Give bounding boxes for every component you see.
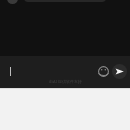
button[interactable]: Message input [0, 61, 92, 83]
button[interactable]: Send [112, 64, 127, 79]
staticText: 由AI 提供软件支持 [49, 79, 82, 84]
button[interactable]: Emoji [96, 64, 111, 79]
